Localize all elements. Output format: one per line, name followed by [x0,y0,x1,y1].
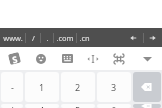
staticText: .com [56,33,74,43]
button[interactable]: / [26,28,40,47]
button[interactable]: .com [54,28,76,47]
button[interactable]: 3 [97,72,131,102]
button[interactable]: Hide keyboard [132,47,162,70]
staticText: 4 [39,104,45,108]
button[interactable]: Backspace [133,104,161,108]
button[interactable]: www. [0,28,25,47]
staticText: 2 [75,81,81,93]
button[interactable]: / [1,104,23,108]
button[interactable]: Next suggestion [144,28,162,47]
button[interactable]: 5 [61,104,95,108]
staticText: www. [3,33,23,43]
button[interactable]: Keyboard layout [54,47,80,70]
staticText: / [32,33,35,43]
staticText: / [10,104,14,108]
button[interactable]: .cn [77,28,92,47]
staticText: 1 [39,81,45,93]
button[interactable]: 6 [97,104,131,108]
staticText: 3 [111,81,117,93]
staticText: 5 [75,104,81,108]
button[interactable]: - [1,72,23,102]
button[interactable]: 4 [25,104,59,108]
button[interactable]: Previous suggestion [123,28,143,47]
staticText: .cn [79,33,90,43]
button[interactable]: Sogou input [0,47,28,70]
button[interactable]: 1 [25,72,59,102]
staticText: . [46,33,49,43]
staticText: S [11,53,18,64]
button[interactable]: 2 [61,72,95,102]
button[interactable]: Move cursor [80,47,106,70]
button[interactable]: Shortcut phrases [106,47,132,70]
staticText: - [11,81,14,93]
button[interactable]: . [41,28,53,47]
button[interactable]: Backspace [133,72,161,102]
staticText: 6 [111,104,117,108]
button[interactable]: Emoji [28,47,54,70]
